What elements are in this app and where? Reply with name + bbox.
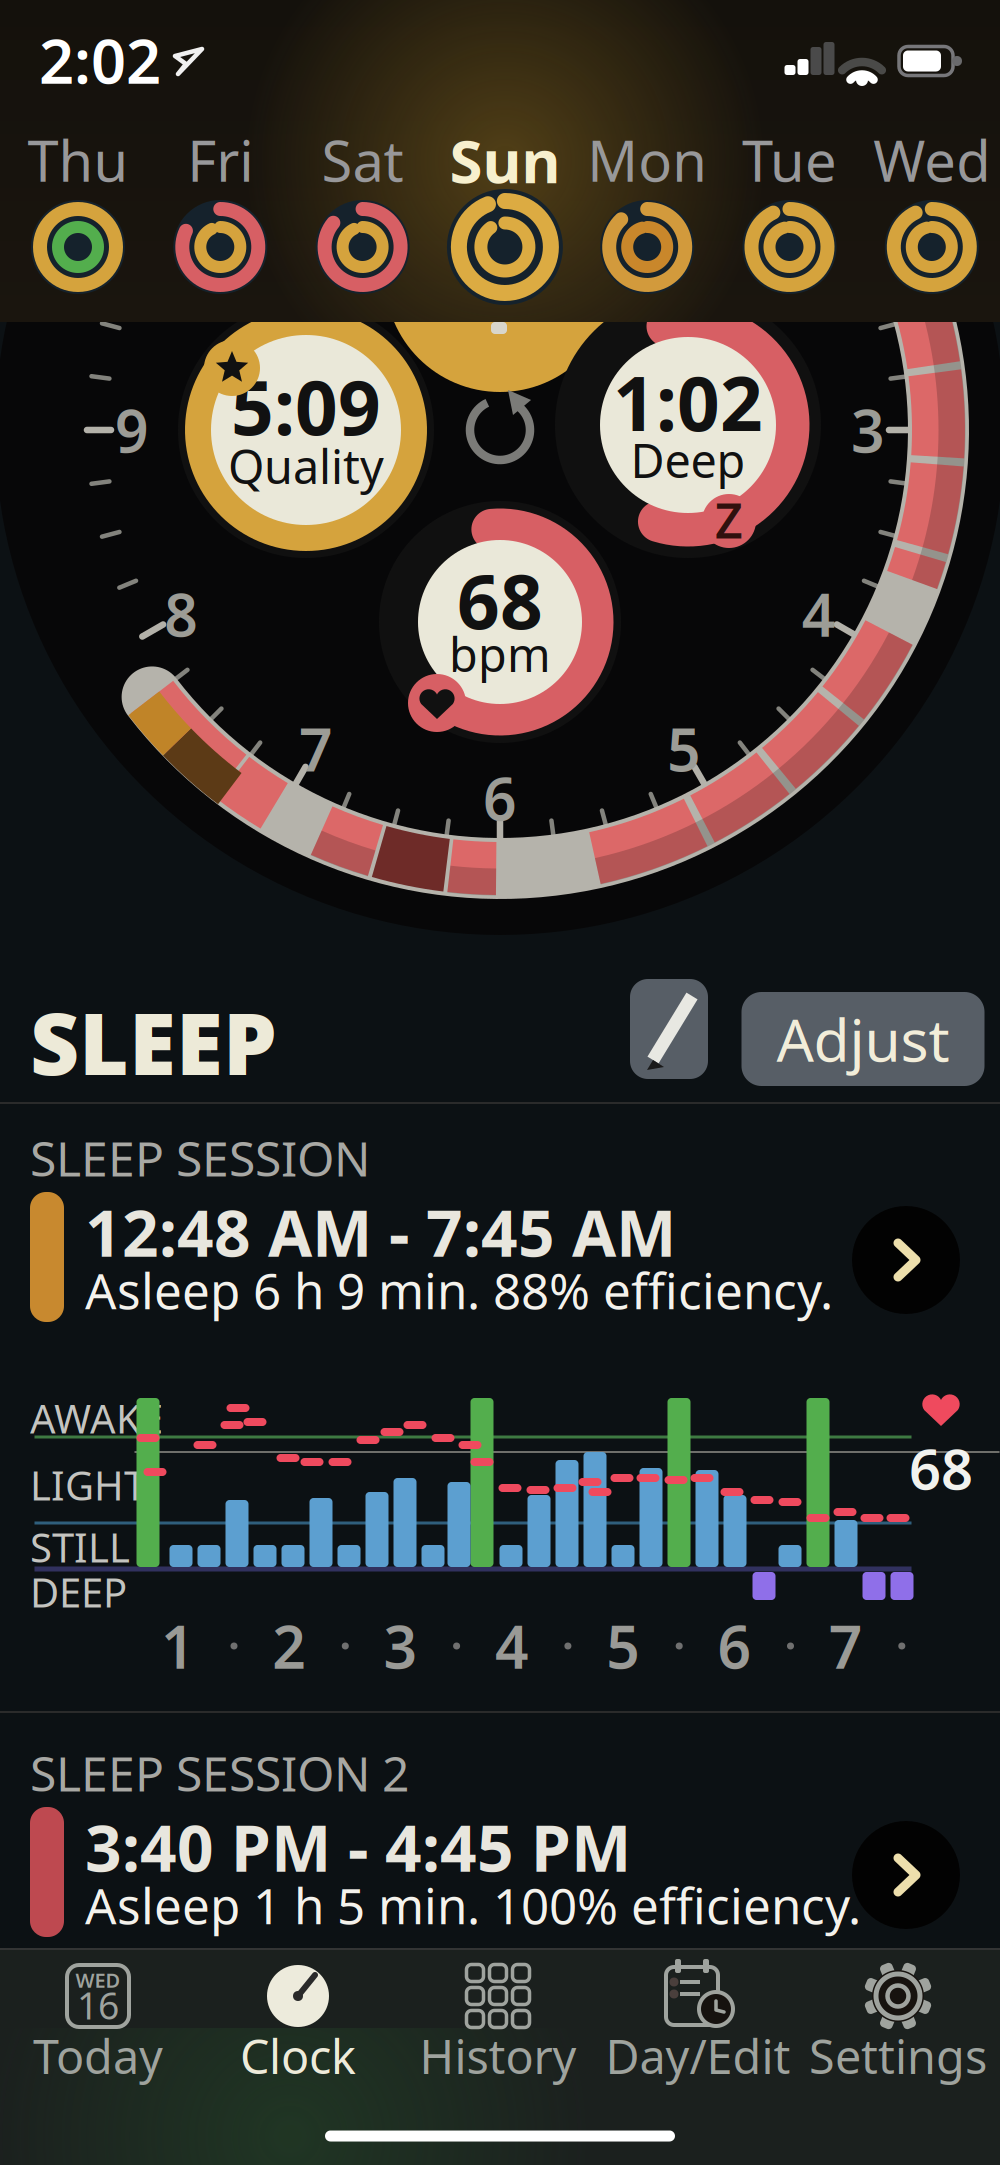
button[interactable]: WED — [18, 1944, 178, 2084]
staticText: WED — [75, 1967, 120, 1993]
staticText: STILL — [30, 1520, 130, 1573]
staticText: AWAKE — [30, 1391, 163, 1444]
staticText: 2:02 — [39, 19, 161, 101]
staticText: DEEP — [30, 1565, 127, 1618]
staticText: Asleep 1 h 5 min. 100% efficiency. — [85, 1872, 861, 1938]
staticText: 5:09 — [231, 356, 381, 456]
staticText: 7 — [299, 710, 333, 788]
staticText: 3:40 PM - 4:45 PM — [85, 1804, 631, 1889]
button[interactable]: Adjust — [741, 992, 984, 1086]
staticText: Deep — [630, 429, 745, 491]
button[interactable]: Thu — [7, 117, 149, 307]
button[interactable]: Sun — [434, 117, 576, 307]
button[interactable]: Fri — [149, 117, 291, 307]
staticText: Wed — [873, 123, 990, 197]
staticText: SLEEP — [30, 985, 277, 1099]
staticText: Thu — [27, 123, 128, 197]
staticText: SLEEP SESSION — [30, 1126, 370, 1190]
staticText: Z — [715, 488, 743, 552]
staticText: SLEEP SESSION 2 — [30, 1741, 409, 1805]
staticText: LIGHT — [30, 1458, 146, 1511]
staticText: History — [419, 2025, 576, 2087]
staticText: 5 — [667, 710, 701, 788]
staticText: 68 — [457, 550, 543, 650]
button[interactable]: Mon — [576, 117, 718, 307]
button[interactable]: 3:40 PM - 4:45 PM — [30, 1773, 970, 1981]
staticText: 12:48 AM - 7:45 AM — [85, 1189, 676, 1274]
staticText: Sun — [449, 120, 560, 200]
staticText: 6 — [483, 759, 517, 837]
staticText: 9 — [115, 391, 149, 469]
staticText: 3 — [384, 1607, 418, 1685]
staticText: 1:02 — [613, 352, 763, 452]
staticText: bpm — [449, 623, 551, 685]
staticText: 8 — [164, 575, 198, 653]
button[interactable]: Clock — [218, 1944, 378, 2084]
staticText: Sat — [322, 123, 404, 197]
staticText: Settings — [809, 2025, 987, 2087]
button[interactable] — [630, 979, 708, 1079]
staticText: Fri — [187, 123, 253, 197]
staticText: 1 — [161, 1607, 195, 1685]
staticText: 16 — [77, 1980, 119, 2030]
staticText: 68 — [909, 1431, 973, 1505]
button[interactable]: History — [418, 1944, 578, 2084]
staticText: 2 — [272, 1607, 306, 1685]
staticText: Tue — [742, 123, 837, 197]
staticText: Quality — [228, 435, 384, 497]
staticText: Clock — [240, 2025, 356, 2087]
button[interactable]: 12:48 AM - 7:45 AM — [30, 1158, 970, 1366]
staticText: 4 — [495, 1607, 529, 1685]
staticText: Adjust — [776, 1000, 949, 1078]
staticText: 7 — [829, 1607, 863, 1685]
staticText: 4 — [802, 575, 836, 653]
staticText: Today — [33, 2025, 163, 2087]
staticText: 3 — [851, 391, 885, 469]
staticText: Day/Edit — [605, 2025, 790, 2087]
staticText: 6 — [717, 1607, 751, 1685]
staticText: Asleep 6 h 9 min. 88% efficiency. — [85, 1257, 833, 1323]
button[interactable]: Day/Edit — [618, 1944, 778, 2084]
staticText: Mon — [587, 123, 707, 197]
staticText: 5 — [606, 1607, 640, 1685]
button[interactable]: Wed — [861, 117, 1000, 307]
button[interactable]: Tue — [718, 117, 860, 307]
button[interactable]: Settings — [818, 1944, 978, 2084]
button[interactable]: Sat — [292, 117, 434, 307]
